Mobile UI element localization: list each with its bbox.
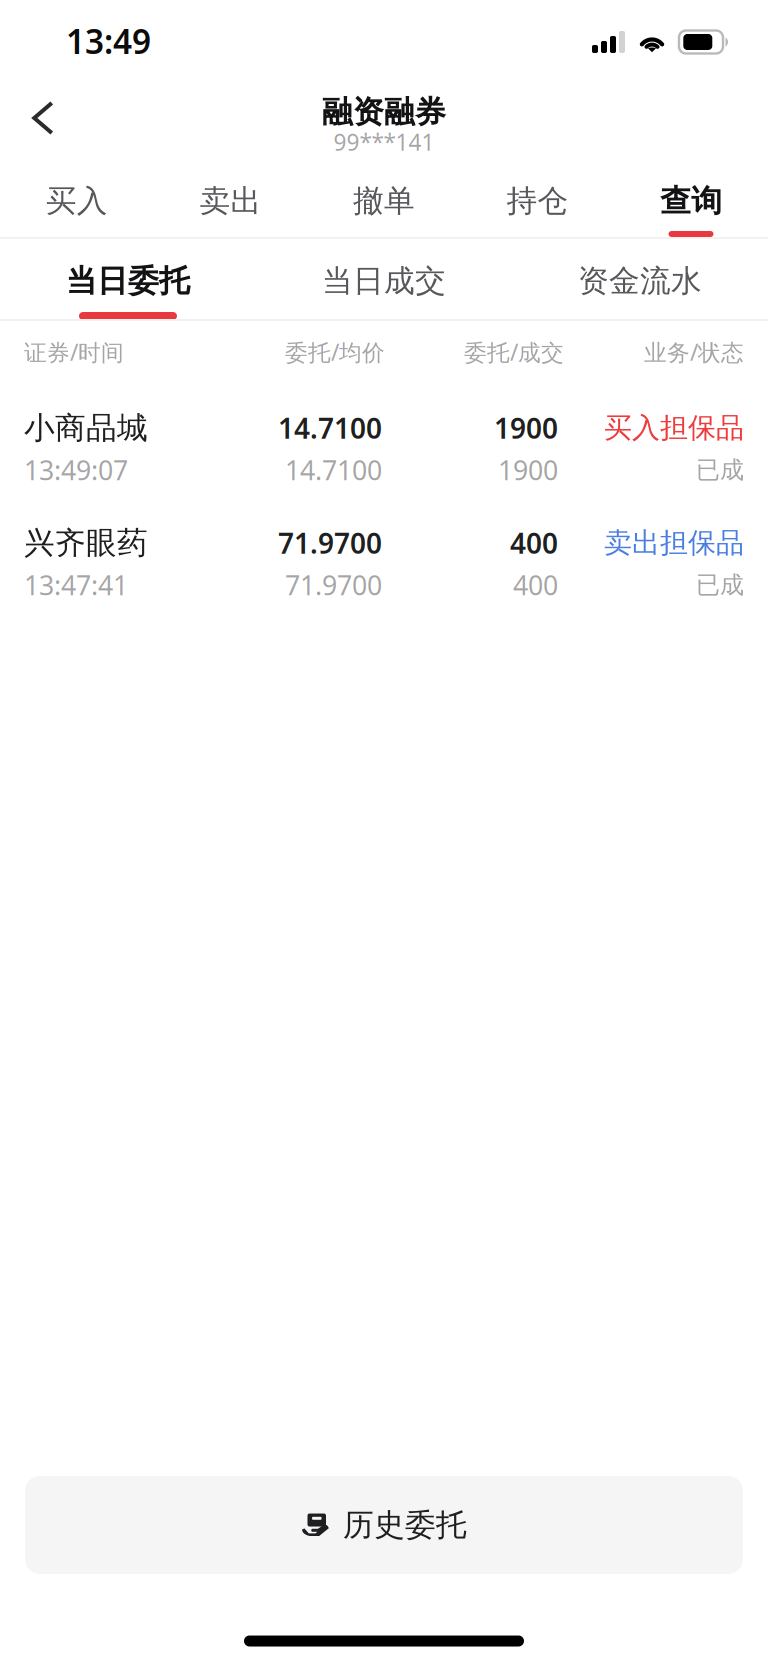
button[interactable]: 当日委托 (0, 243, 256, 319)
staticText: 13:49 (66, 19, 151, 63)
staticText: 兴齐眼药 (24, 524, 148, 562)
staticText: 当日委托 (66, 262, 190, 300)
button[interactable]: 持仓 (461, 168, 614, 234)
button[interactable]: 资金流水 (512, 243, 768, 319)
staticText: 已成 (696, 455, 744, 485)
staticText: 400 (510, 524, 558, 562)
button[interactable]: 撤单 (307, 168, 461, 234)
staticText: 业务/状态 (644, 337, 744, 367)
staticText: 400 (513, 567, 558, 603)
staticText: 买入 (46, 182, 108, 220)
staticText: 小商品城 (24, 409, 148, 447)
button[interactable] (0, 508, 768, 620)
staticText: 委托/均价 (285, 337, 385, 367)
button[interactable]: 买入 (0, 168, 154, 234)
button[interactable]: 卖出 (154, 168, 307, 234)
staticText: 71.9700 (278, 524, 382, 562)
staticText: 14.7100 (278, 409, 382, 447)
staticText: 已成 (696, 570, 744, 600)
staticText: 融资融券 (322, 93, 446, 131)
staticText: 资金流水 (578, 262, 702, 300)
button[interactable]: 查询 (614, 168, 768, 234)
staticText: 当日成交 (322, 262, 446, 300)
staticText: 证券/时间 (24, 337, 124, 367)
button[interactable]: 历史委托 (25, 1476, 743, 1574)
staticText: 14.7100 (285, 452, 382, 488)
staticText: 卖出担保品 (604, 526, 744, 560)
staticText: 13:49:07 (24, 452, 128, 488)
staticText: 71.9700 (285, 567, 382, 603)
button[interactable]: 当日成交 (256, 243, 512, 319)
staticText: 撤单 (353, 182, 415, 220)
staticText: 1900 (494, 409, 558, 447)
staticText: 99***141 (333, 127, 434, 157)
staticText: 查询 (660, 182, 722, 220)
staticText: 13:47:41 (24, 567, 128, 603)
button[interactable] (0, 393, 768, 505)
staticText: 历史委托 (343, 1506, 467, 1544)
staticText: 1900 (498, 452, 558, 488)
staticText: 持仓 (507, 182, 569, 220)
staticText: 委托/成交 (464, 337, 564, 367)
button[interactable]: 返回 (0, 75, 86, 161)
staticText: 卖出 (199, 182, 261, 220)
staticText: 买入担保品 (604, 411, 744, 445)
